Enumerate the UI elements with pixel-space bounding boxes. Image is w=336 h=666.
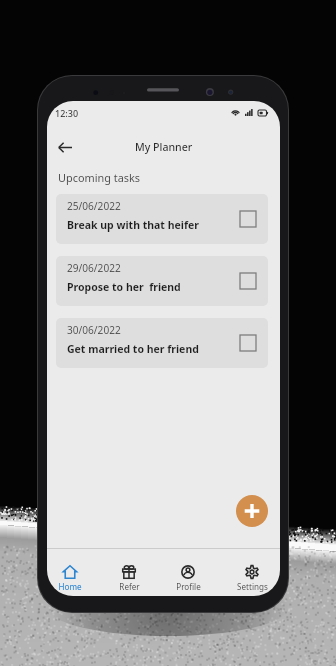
button[interactable]: Mark complete: [240, 273, 256, 289]
staticText: Upcoming tasks: [58, 170, 141, 185]
staticText: Propose to her friend: [67, 280, 181, 294]
button[interactable]: Home: [47, 549, 99, 592]
staticText: My Planner: [135, 140, 193, 154]
button[interactable]: 25/06/2022: [56, 194, 268, 244]
staticText: Profile: [176, 581, 201, 592]
staticText: Settings: [237, 581, 268, 592]
staticText: 12:30: [55, 107, 79, 119]
button[interactable]: 29/06/2022: [56, 256, 268, 306]
button[interactable]: Profile: [159, 549, 217, 592]
staticText: 25/06/2022: [67, 199, 121, 213]
button[interactable]: Settings: [223, 549, 280, 592]
button[interactable]: Refer: [100, 549, 158, 592]
staticText: Get married to her friend: [67, 342, 199, 356]
staticText: Refer: [119, 581, 140, 592]
staticText: Break up with that heifer: [67, 218, 199, 232]
button[interactable]: Mark complete: [240, 211, 256, 227]
staticText: 30/06/2022: [67, 323, 121, 337]
button[interactable]: Add task: [236, 495, 268, 527]
staticText: 29/06/2022: [67, 261, 121, 275]
button[interactable]: 30/06/2022: [56, 318, 268, 368]
button[interactable]: Mark complete: [240, 335, 256, 351]
staticText: Home: [58, 581, 82, 592]
button[interactable]: Back: [51, 133, 79, 161]
